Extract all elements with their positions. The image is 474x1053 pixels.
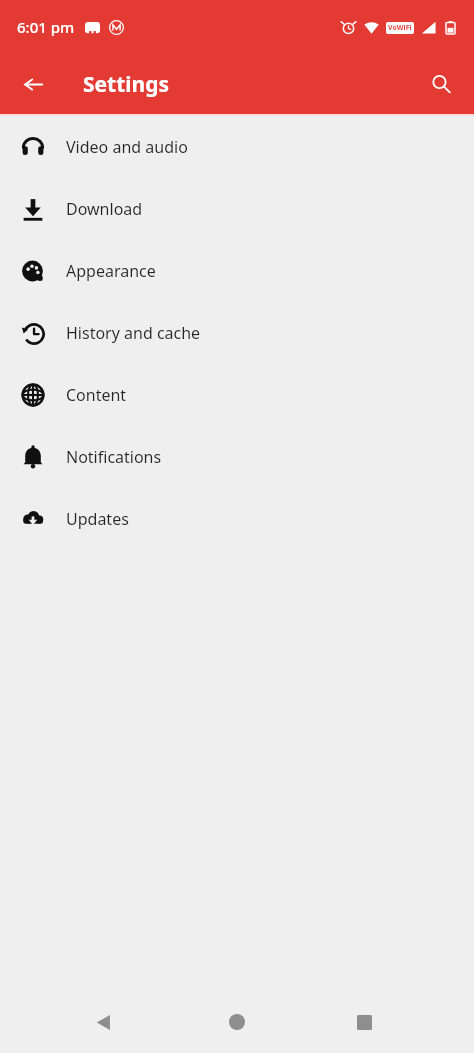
staticText: Settings bbox=[83, 70, 170, 99]
button[interactable]: Updates bbox=[0, 488, 474, 550]
staticText: Notifications bbox=[66, 446, 162, 468]
button[interactable]: Back bbox=[13, 64, 53, 104]
button[interactable]: Video and audio bbox=[0, 116, 474, 178]
button[interactable]: Home bbox=[217, 1002, 257, 1042]
staticText: VoWiFi bbox=[388, 23, 412, 33]
staticText: Updates bbox=[66, 508, 129, 530]
button[interactable]: Appearance bbox=[0, 240, 474, 302]
staticText: History and cache bbox=[66, 322, 201, 344]
staticText: 6:01 pm bbox=[17, 17, 75, 37]
button[interactable]: Search bbox=[421, 64, 461, 104]
button[interactable]: Notifications bbox=[0, 426, 474, 488]
button[interactable]: Recent apps bbox=[344, 1002, 384, 1042]
staticText: Appearance bbox=[66, 260, 156, 282]
staticText: Download bbox=[66, 198, 143, 220]
staticText: Content bbox=[66, 384, 127, 406]
staticText: Video and audio bbox=[66, 136, 188, 158]
button[interactable]: Content bbox=[0, 364, 474, 426]
button[interactable]: History and cache bbox=[0, 302, 474, 364]
button[interactable]: Back bbox=[83, 1002, 123, 1042]
button[interactable]: Download bbox=[0, 178, 474, 240]
